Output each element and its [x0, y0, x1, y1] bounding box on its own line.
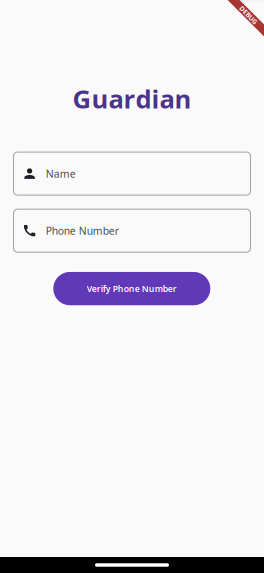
staticText: Name [46, 166, 76, 181]
staticText: DEBUG [237, 10, 260, 20]
button[interactable]: Phone Number [13, 209, 250, 252]
staticText: Phone Number [46, 224, 119, 238]
staticText: Guardian [72, 81, 191, 116]
button[interactable]: Verify Phone Number [53, 272, 210, 305]
staticText: Verify Phone Number [87, 283, 177, 294]
button[interactable]: Name [13, 152, 250, 195]
